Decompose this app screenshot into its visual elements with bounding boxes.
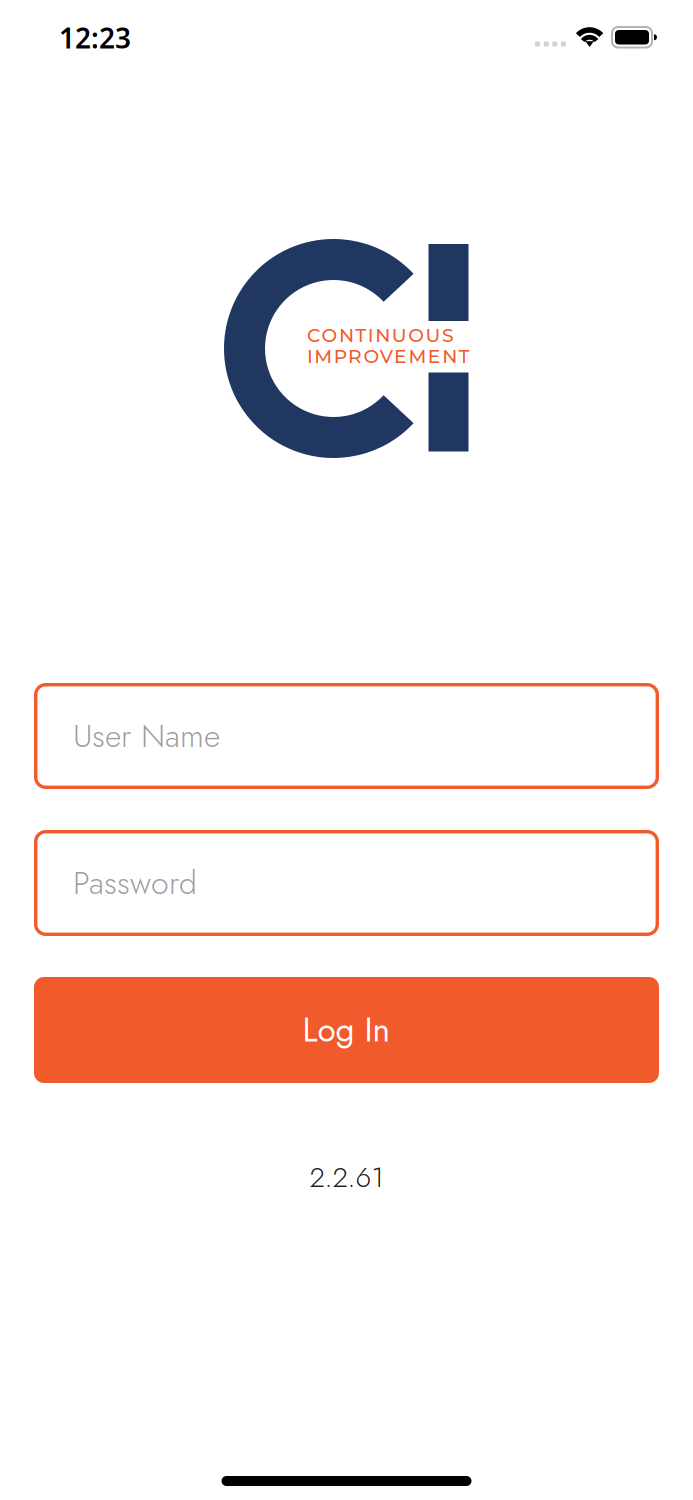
- button[interactable]: Log In: [34, 977, 659, 1083]
- staticText: Log In: [302, 1006, 390, 1054]
- staticText: User Name: [73, 713, 220, 759]
- staticText: CONTINUOUS: [307, 324, 460, 347]
- staticText: IMPROVEMENT: [307, 345, 476, 368]
- staticText: Password: [73, 860, 197, 906]
- staticText: 2.2.61: [309, 1157, 383, 1197]
- button[interactable]: User Name: [34, 683, 659, 789]
- staticText: 12:23: [59, 19, 131, 56]
- button[interactable]: Password: [34, 830, 659, 936]
